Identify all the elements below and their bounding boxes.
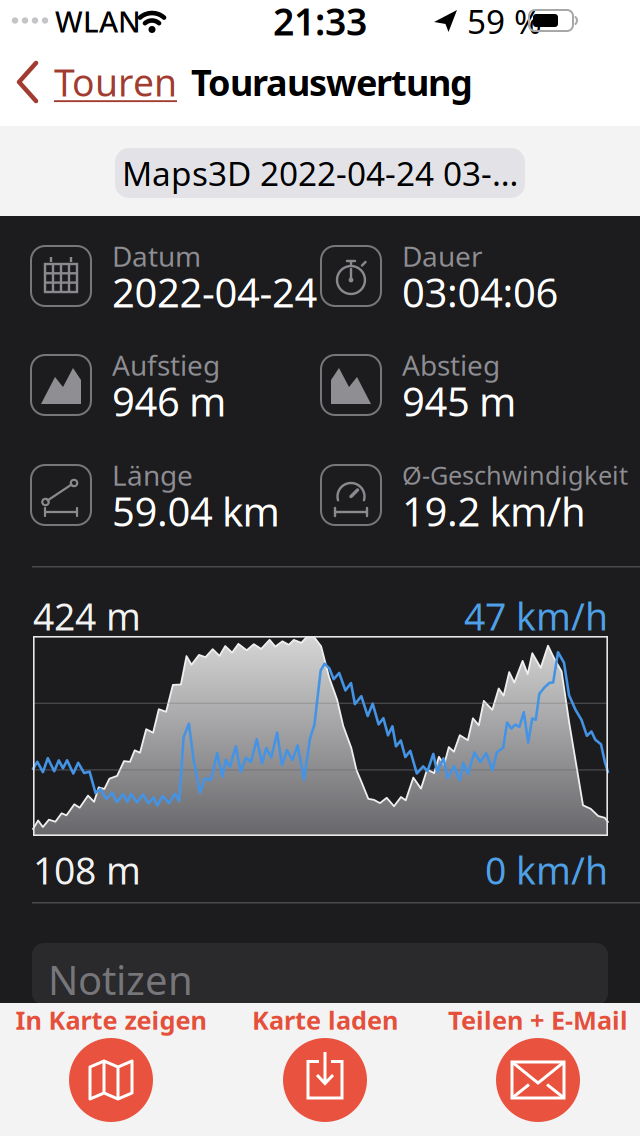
staticText: Tourauswertung — [191, 58, 473, 106]
staticText: 59.04 km — [112, 484, 279, 537]
staticText: Touren — [54, 57, 177, 107]
button[interactable]: Touren — [12, 58, 187, 106]
staticText: 2022-04-24 — [112, 265, 317, 318]
staticText: 108 m — [33, 845, 141, 895]
staticText: Abstieg — [402, 346, 500, 384]
staticText: Notizen — [48, 953, 193, 1006]
staticText: Teilen + E-Mail — [448, 1003, 628, 1037]
button[interactable]: In Karte zeigen — [11, 1005, 211, 1127]
button[interactable]: Teilen + E-Mail — [438, 1005, 638, 1127]
staticText: Länge — [112, 456, 193, 494]
button[interactable]: Karte laden — [225, 1005, 425, 1127]
staticText: Ø-Geschwindigkeit — [402, 458, 628, 492]
staticText: 945 m — [402, 374, 516, 427]
staticText: Karte laden — [252, 1003, 398, 1037]
staticText: WLAN — [55, 1, 141, 40]
staticText: In Karte zeigen — [15, 1003, 206, 1037]
staticText: 59 % — [467, 0, 542, 43]
staticText: Maps3D 2022-04-24 03-… — [122, 151, 518, 195]
staticText: 03:04:06 — [402, 265, 558, 318]
staticText: 946 m — [112, 374, 226, 427]
button[interactable]: Maps3D 2022-04-24 03-… — [115, 148, 525, 198]
button[interactable]: Notizen — [32, 943, 608, 1005]
staticText: Datum — [112, 237, 201, 275]
staticText: Aufstieg — [112, 346, 220, 384]
staticText: 21:33 — [273, 0, 367, 46]
staticText: 47 km/h — [464, 591, 608, 641]
staticText: 0 km/h — [485, 845, 608, 895]
staticText: 424 m — [33, 591, 141, 641]
staticText: 19.2 km/h — [402, 484, 586, 537]
staticText: Dauer — [402, 237, 483, 275]
